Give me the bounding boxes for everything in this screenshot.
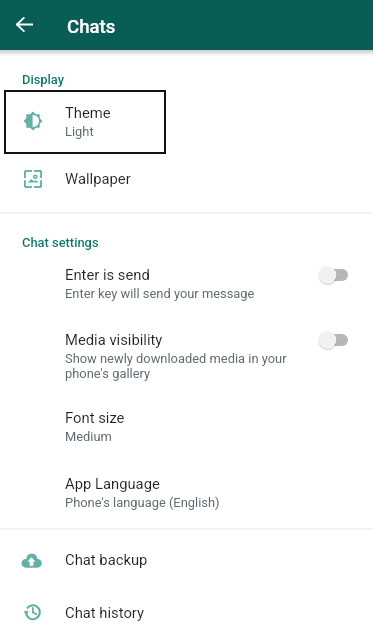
staticText: Display — [22, 72, 65, 87]
staticText: Chat backup — [65, 551, 148, 568]
button[interactable]: Wallpaper — [0, 157, 373, 203]
staticText: Light — [65, 124, 94, 139]
staticText: Enter key will send your message — [65, 286, 255, 301]
button[interactable]: Font size — [0, 409, 373, 459]
button[interactable]: Back — [7, 6, 44, 43]
staticText: Font size — [65, 409, 125, 426]
staticText: Show newly downloaded media in your phon… — [65, 351, 287, 381]
staticText: Enter is send — [65, 266, 150, 283]
staticText: App Language — [65, 475, 160, 492]
button[interactable]: Theme — [4, 90, 166, 154]
staticText: Chats — [67, 16, 116, 38]
staticText: Theme — [65, 104, 111, 121]
button[interactable]: Media visibility — [0, 331, 373, 393]
button[interactable]: Chat history — [0, 594, 373, 640]
staticText: Media visibility — [65, 331, 163, 348]
staticText: Chat history — [65, 604, 145, 621]
staticText: Wallpaper — [65, 170, 131, 187]
staticText: Chat settings — [22, 235, 99, 250]
button[interactable]: App Language — [0, 475, 373, 525]
staticText: Phone's language (English) — [65, 495, 220, 510]
button[interactable]: Enter is send — [0, 266, 373, 316]
button[interactable]: Chat backup — [0, 541, 373, 591]
staticText: Medium — [65, 429, 112, 444]
